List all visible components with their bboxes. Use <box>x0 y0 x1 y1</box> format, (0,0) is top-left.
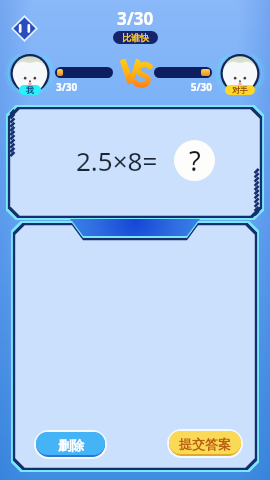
staticText: ? <box>189 142 201 179</box>
staticText: 比谁快 <box>122 32 149 43</box>
staticText: 3/30 <box>56 80 78 94</box>
button[interactable]: 对手 <box>212 50 268 102</box>
staticText: 删除 <box>58 437 84 453</box>
button[interactable]: 比谁快 <box>113 31 158 44</box>
staticText: 2.5×8= <box>76 143 158 178</box>
staticText: 3/30 <box>117 7 154 30</box>
staticText: 提交答案 <box>179 436 231 452</box>
staticText: 对手 <box>232 85 248 95</box>
button[interactable]: 我 <box>2 50 58 102</box>
staticText: 我 <box>26 85 34 95</box>
button[interactable]: 删除 <box>34 430 107 459</box>
staticText: 5/30 <box>154 80 212 94</box>
button[interactable]: 提交答案 <box>167 429 243 458</box>
button[interactable]: Pause <box>11 15 38 42</box>
button[interactable] <box>11 221 259 472</box>
